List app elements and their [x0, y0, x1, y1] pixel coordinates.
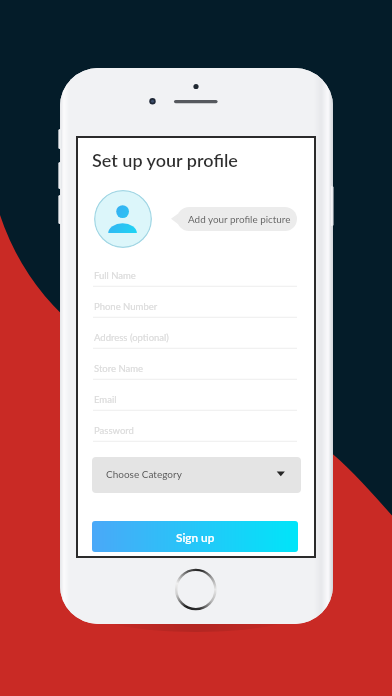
- button[interactable]: Address (optional): [93, 326, 297, 356]
- button[interactable]: Add your profile picture: [94, 190, 152, 248]
- staticText: Choose Category: [106, 468, 182, 480]
- staticText: Password: [94, 425, 134, 436]
- staticText: Set up your profile: [92, 149, 238, 171]
- staticText: Add your profile picture: [188, 213, 291, 225]
- button[interactable]: Store Name: [93, 357, 297, 387]
- button[interactable]: Choose Category: [92, 457, 301, 493]
- staticText: Address (optional): [94, 332, 169, 343]
- staticText: Phone Number: [94, 301, 158, 312]
- staticText: Full Name: [94, 270, 136, 281]
- staticText: Email: [94, 394, 117, 405]
- staticText: Store Name: [94, 363, 144, 374]
- button[interactable]: Add your profile picture: [171, 207, 291, 231]
- button[interactable]: Sign up: [92, 521, 298, 552]
- button[interactable]: Phone Number: [93, 295, 297, 325]
- staticText: Sign up: [176, 530, 215, 544]
- button[interactable]: Full Name: [93, 264, 297, 294]
- button[interactable]: Email: [93, 388, 297, 418]
- button[interactable]: Password: [93, 419, 297, 449]
